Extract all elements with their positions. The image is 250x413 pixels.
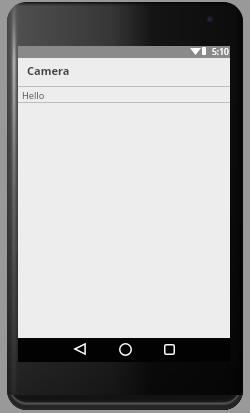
staticText: Hello <box>22 89 45 102</box>
button[interactable]: Camera <box>18 56 230 85</box>
button[interactable]: Home <box>113 337 137 361</box>
button[interactable]: Back <box>68 337 92 361</box>
staticText: Camera <box>27 63 70 78</box>
button[interactable]: Recents <box>157 337 181 361</box>
staticText: 5:10 <box>212 46 229 58</box>
button[interactable]: Hello <box>18 87 230 103</box>
